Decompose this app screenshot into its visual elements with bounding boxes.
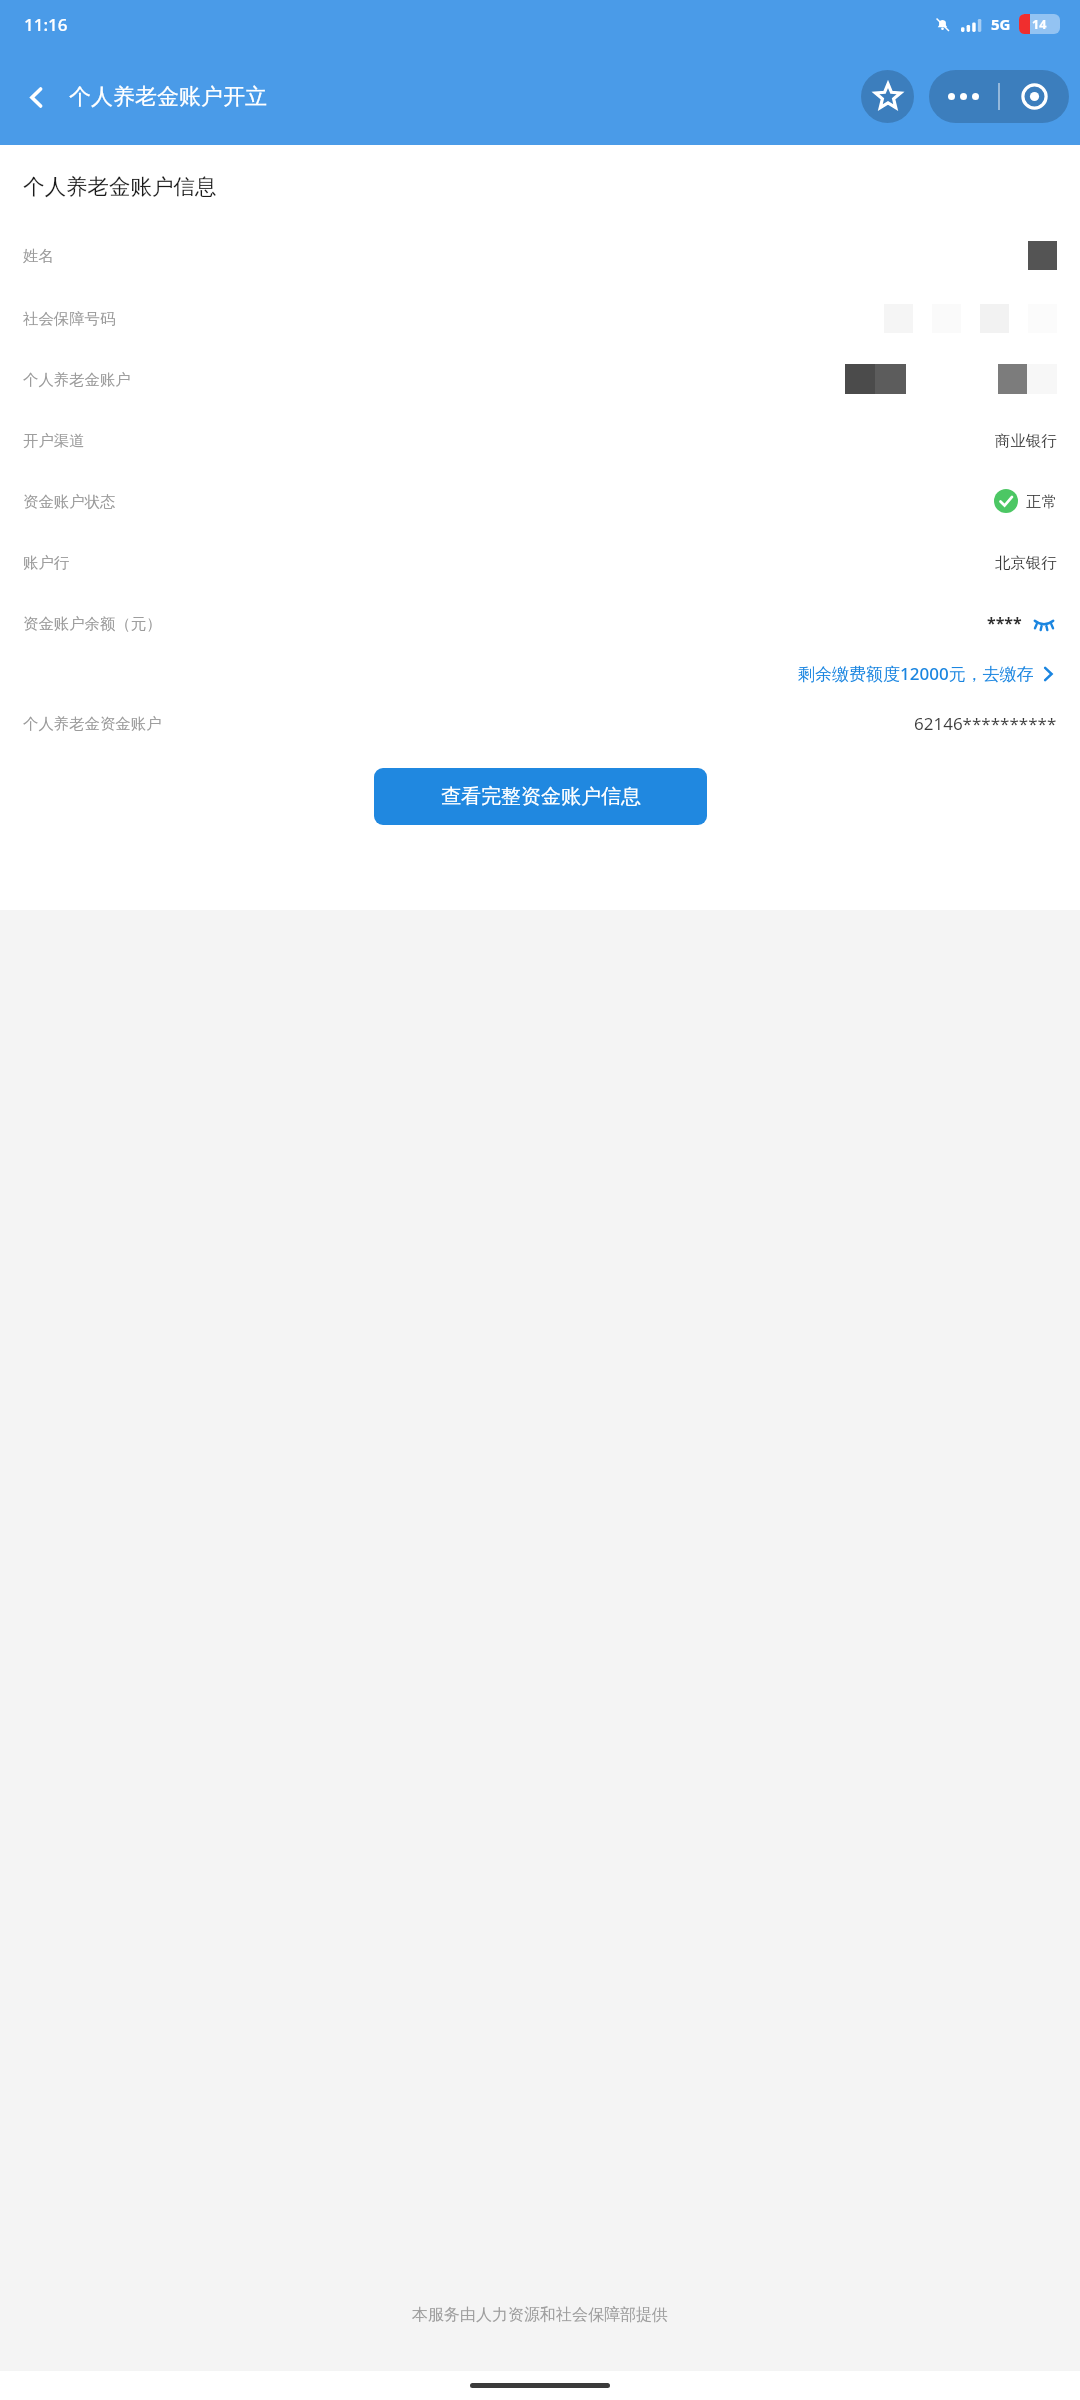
staticText: 个人养老金资金账户: [23, 714, 162, 733]
button[interactable]: Back: [14, 75, 58, 119]
staticText: 5G: [991, 14, 1011, 34]
staticText: 账户行: [23, 553, 70, 572]
staticText: 62146**********: [914, 712, 1057, 735]
staticText: 本服务由人力资源和社会保障部提供: [412, 2305, 668, 2325]
staticText: 北京银行: [995, 553, 1057, 572]
staticText: 剩余缴费额度12000元，去缴存: [798, 662, 1034, 685]
staticText: 个人养老金账户信息: [23, 173, 217, 200]
staticText: 开户渠道: [23, 431, 85, 450]
button[interactable]: 查看完整资金账户信息: [374, 768, 707, 825]
staticText: 个人养老金账户开立: [69, 83, 267, 111]
staticText: 社会保障号码: [23, 309, 116, 328]
button[interactable]: More options: [929, 70, 998, 123]
staticText: 资金账户余额（元）: [23, 614, 162, 633]
staticText: 资金账户状态: [23, 492, 116, 511]
staticText: 11:16: [24, 13, 68, 36]
staticText: 14: [1032, 16, 1047, 33]
button[interactable]: Show balance: [1031, 610, 1057, 636]
staticText: 正常: [1026, 492, 1057, 511]
staticText: 查看完整资金账户信息: [441, 784, 641, 809]
button[interactable]: 剩余缴费额度12000元，去缴存: [798, 662, 1057, 685]
button[interactable]: Close mini program: [1000, 70, 1069, 123]
staticText: 个人养老金账户: [23, 370, 131, 389]
staticText: 姓名: [23, 246, 54, 265]
staticText: 商业银行: [995, 431, 1057, 450]
button[interactable]: Favorite: [861, 70, 914, 123]
staticText: ****: [987, 612, 1022, 634]
